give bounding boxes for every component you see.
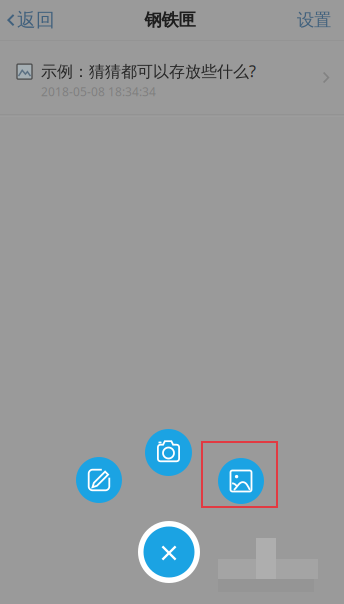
staticText: 设置 (297, 9, 331, 31)
button[interactable]: 关闭 (138, 521, 200, 583)
button[interactable]: 示例：猜猜都可以存放些什么? (0, 40, 344, 114)
button[interactable]: 设置 (281, 0, 344, 40)
button[interactable]: 写笔记 (76, 457, 122, 503)
button[interactable]: 拍照 (145, 429, 192, 476)
button[interactable]: 相册 (218, 458, 264, 504)
staticText: 钢铁匣 (144, 9, 195, 31)
staticText: 返回 (17, 8, 55, 31)
staticText: 2018-05-08 18:34:34 (41, 84, 156, 100)
button[interactable]: 返回 (0, 0, 67, 40)
staticText: 示例：猜猜都可以存放些什么? (41, 60, 256, 82)
